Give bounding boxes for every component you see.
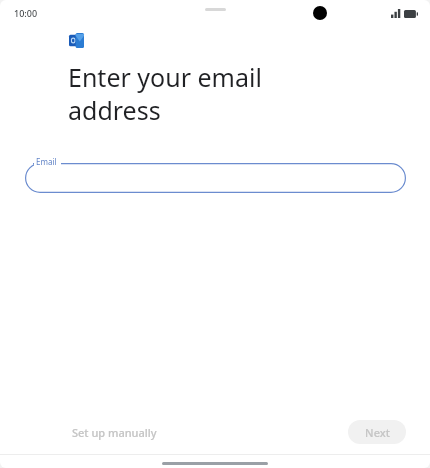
button[interactable]: Next [348,420,406,444]
staticText: Enter your email address [68,60,262,127]
staticText: Next [365,425,390,440]
staticText: Email [36,156,57,167]
other: Outlook [69,33,84,48]
staticText: Set up manually [72,425,157,440]
button[interactable]: Email [25,155,406,193]
staticText: 10:00 [14,7,38,19]
button[interactable]: Set up manually [60,419,169,446]
